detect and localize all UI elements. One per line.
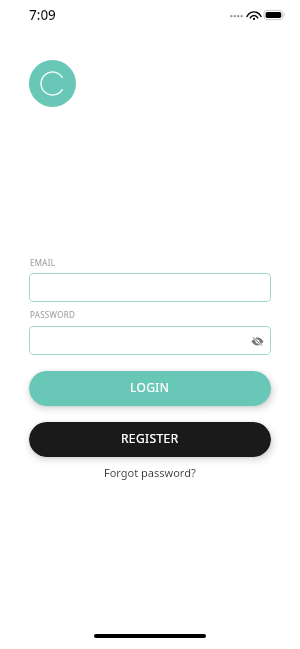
button[interactable]: Toggle password visibility	[250, 334, 264, 348]
button[interactable]: REGISTER	[29, 422, 271, 457]
staticText: PASSWORD	[30, 309, 76, 320]
button[interactable]	[29, 273, 271, 302]
button[interactable]: Toggle password visibility	[29, 326, 271, 355]
button[interactable]: Forgot password?	[104, 465, 196, 480]
button[interactable]: LOGIN	[29, 371, 271, 406]
staticText: 7:09	[29, 6, 56, 24]
staticText: LOGIN	[130, 379, 170, 395]
staticText: EMAIL	[30, 257, 56, 268]
staticText: REGISTER	[121, 430, 179, 446]
